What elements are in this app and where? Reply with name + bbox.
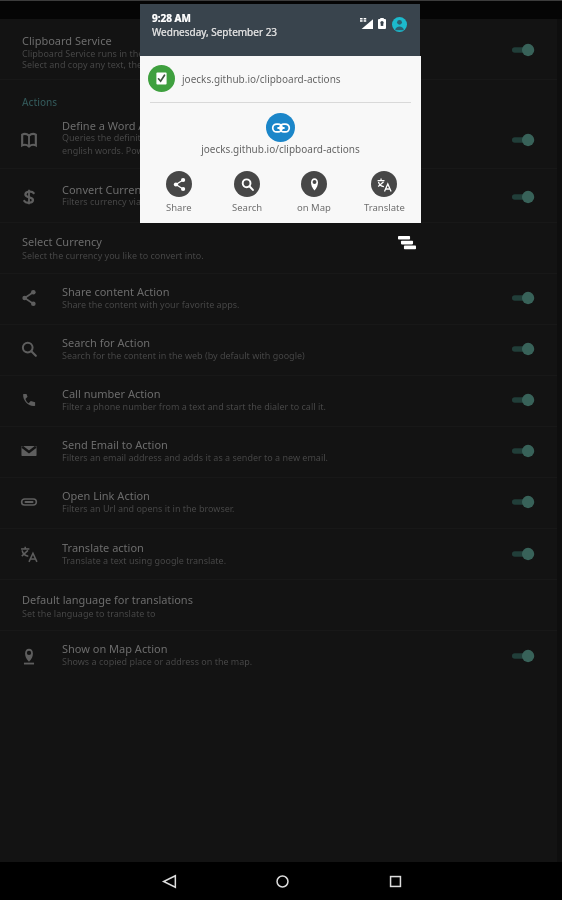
staticText: Set the language to translate to (22, 607, 156, 619)
button[interactable]: Define a Word Action (0, 110, 562, 168)
staticText: Shows a copied place or address on the m… (62, 655, 253, 667)
button[interactable]: Search (217, 171, 277, 214)
button[interactable]: Open Link Action (0, 480, 562, 525)
staticText: Convert Currency Action (62, 182, 188, 197)
staticText: Define a Word Action (62, 118, 171, 133)
button[interactable]: Default language for translations (0, 584, 562, 630)
button[interactable]: Back (150, 862, 188, 900)
staticText: Search for the content in the web (by de… (62, 349, 305, 361)
staticText: on Map (297, 201, 331, 214)
button[interactable]: Select Currency (0, 226, 562, 273)
staticText: Filters an Url and opens it in the brows… (62, 502, 235, 514)
staticText: Share content Action (62, 284, 170, 299)
staticText: Actions (22, 95, 58, 109)
staticText: Open Link Action (62, 488, 150, 503)
button[interactable]: Translate (354, 171, 414, 214)
button[interactable]: Home (263, 862, 301, 900)
staticText: Select the currency you like to convert … (22, 249, 204, 261)
staticText: Search (232, 201, 263, 214)
button[interactable]: Show on Map Action (0, 633, 562, 678)
staticText: Filters currency via Currencylayer. (62, 195, 204, 207)
staticText: english words. Powered by Wordnik. (62, 144, 216, 156)
button[interactable]: Open link (266, 113, 295, 142)
button[interactable]: Search for Action (0, 327, 562, 372)
staticText: Default language for translations (22, 592, 193, 607)
staticText: Filter a phone number from a text and st… (62, 400, 326, 412)
staticText: Search for Action (62, 335, 151, 350)
staticText: Share the content with your favorite app… (62, 298, 240, 310)
button[interactable]: Translate action (0, 532, 562, 577)
button[interactable]: Call number Action (0, 378, 562, 423)
button[interactable]: Recents (376, 862, 414, 900)
button[interactable]: on Map (284, 171, 344, 214)
staticText: Show on Map Action (62, 641, 168, 656)
staticText: Clipboard Service (22, 33, 112, 48)
staticText: Share (166, 201, 192, 214)
staticText: Queries the definition of a selected wor… (62, 131, 321, 143)
staticText: Translate (364, 201, 405, 214)
button[interactable]: Send Email to Action (0, 429, 562, 474)
button[interactable]: Share (149, 171, 209, 214)
button[interactable]: Account (392, 17, 407, 32)
staticText: Clipboard Service runs in the background… (22, 47, 199, 59)
button[interactable]: Clipboard Service (0, 24, 562, 76)
staticText: Select Currency (22, 234, 102, 249)
staticText: Select and copy any text, then click on … (22, 58, 251, 70)
staticText: joecks.github.io/clipboard-actions (140, 142, 421, 156)
button[interactable]: Share content Action (0, 276, 562, 321)
staticText: 9:28 AM (152, 11, 191, 25)
staticText: Translate a text using google translate. (62, 554, 227, 566)
staticText: Filters an email address and adds it as … (62, 451, 328, 463)
staticText: Call number Action (62, 386, 161, 401)
staticText: Translate action (62, 540, 144, 555)
button[interactable]: joecks.github.io/clipboard-actions (140, 56, 421, 102)
button[interactable]: Sort actions (385, 220, 429, 264)
staticText: Send Email to Action (62, 437, 168, 452)
staticText: Wednesday, September 23 (152, 25, 278, 39)
button[interactable]: Convert Currency Action (0, 174, 562, 219)
staticText: joecks.github.io/clipboard-actions (182, 72, 341, 86)
